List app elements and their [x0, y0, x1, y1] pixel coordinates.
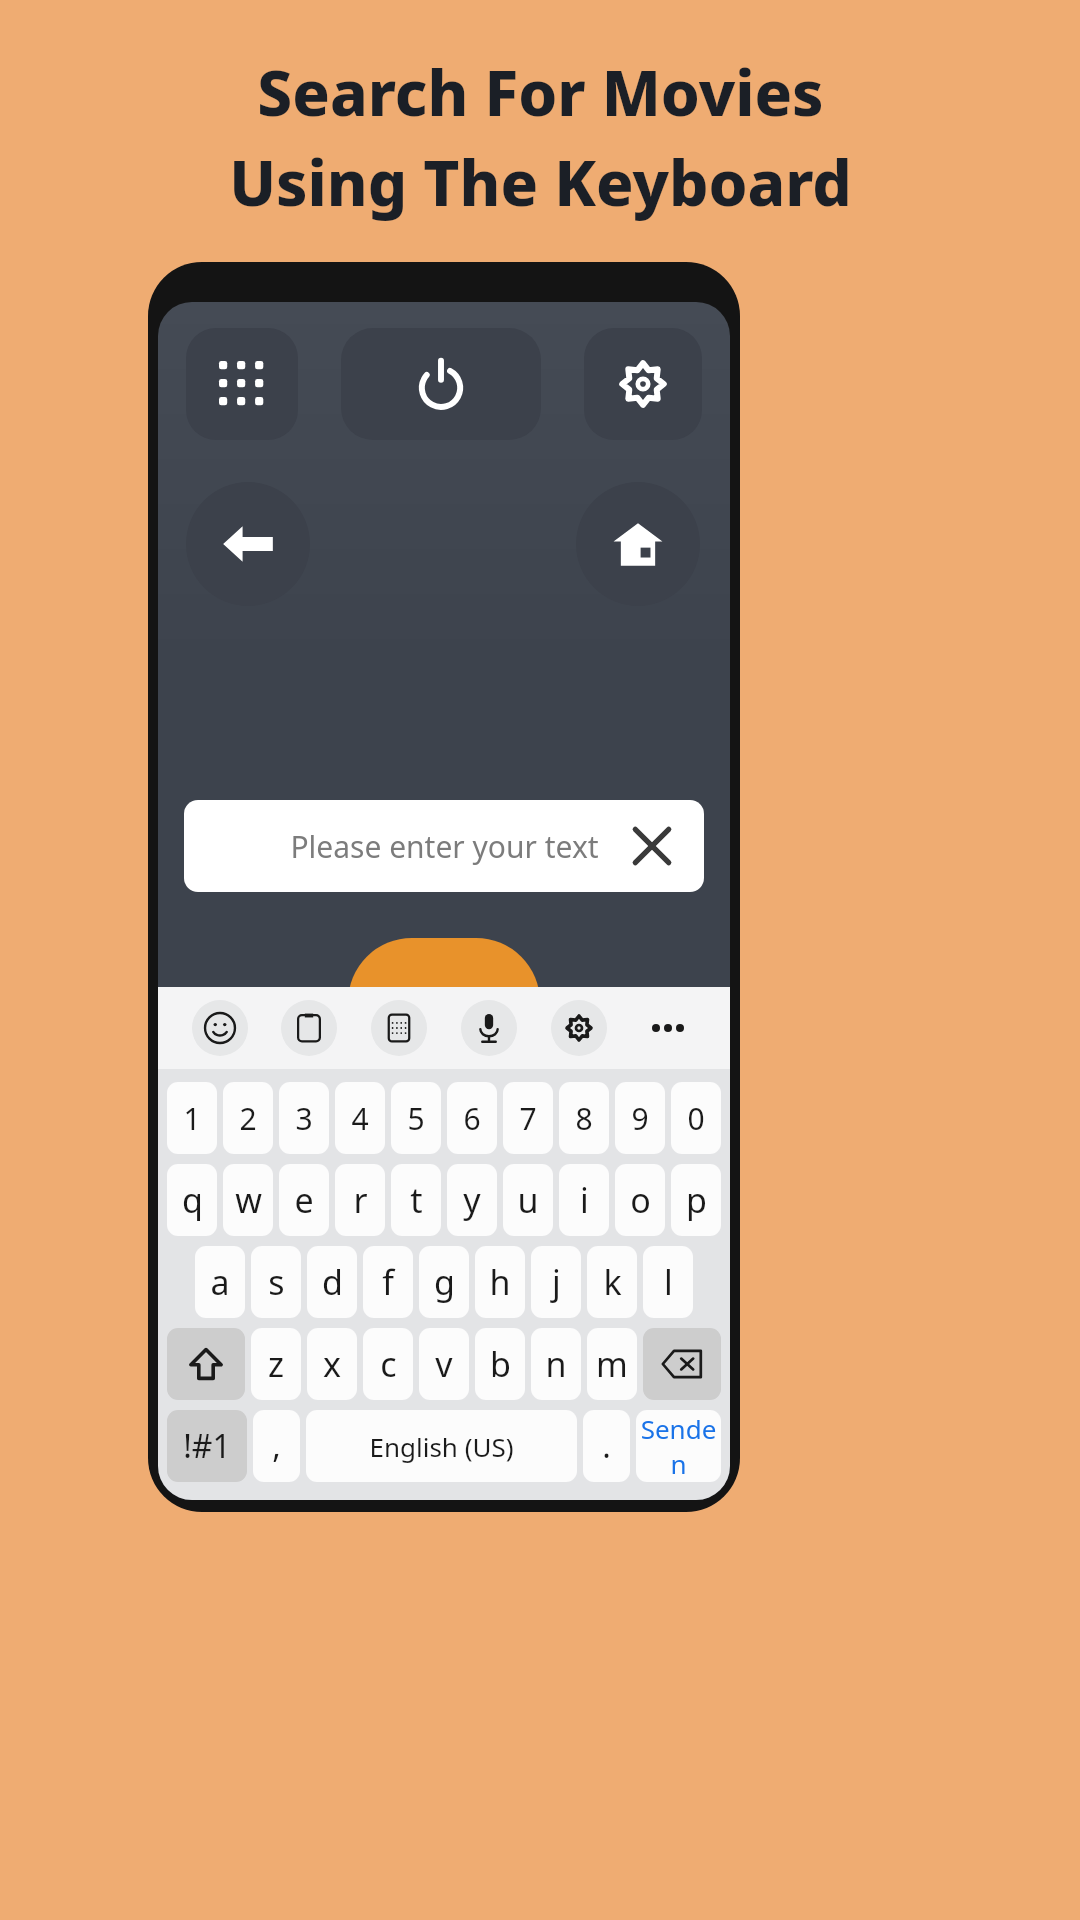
button[interactable]: p	[671, 1164, 721, 1236]
button[interactable]: e	[279, 1164, 329, 1236]
button[interactable]: 5	[391, 1082, 441, 1154]
button[interactable]: b	[475, 1328, 525, 1400]
button[interactable]: y	[447, 1164, 497, 1236]
button[interactable]: 4	[335, 1082, 385, 1154]
staticText: e	[294, 1177, 314, 1223]
staticText: 6	[463, 1098, 481, 1139]
staticText: y	[463, 1177, 481, 1223]
staticText: u	[517, 1177, 539, 1223]
button[interactable]: OK	[355, 1086, 533, 1259]
button[interactable]: i	[559, 1164, 609, 1236]
staticText: 3	[295, 1098, 313, 1139]
button[interactable]: 9	[615, 1082, 665, 1154]
button[interactable]: Keypad	[371, 1000, 427, 1056]
staticText: b	[490, 1341, 511, 1387]
button[interactable]: c	[363, 1328, 413, 1400]
button[interactable]: 3	[279, 1082, 329, 1154]
button[interactable]: 6	[447, 1082, 497, 1154]
button[interactable]: q	[167, 1164, 217, 1236]
staticText: m	[596, 1341, 628, 1387]
staticText: j	[552, 1259, 561, 1305]
staticText: o	[630, 1177, 651, 1223]
button[interactable]: m	[587, 1328, 637, 1400]
button[interactable]: a	[195, 1246, 245, 1318]
button[interactable]: Send	[636, 1410, 721, 1482]
button[interactable]: Up	[348, 938, 540, 1188]
staticText: d	[322, 1259, 343, 1305]
staticText: !#1	[183, 1424, 231, 1468]
staticText: 4	[351, 1098, 369, 1139]
staticText: x	[323, 1341, 341, 1387]
staticText: 2	[239, 1098, 257, 1139]
staticText: 5	[407, 1098, 425, 1139]
button[interactable]: h	[475, 1246, 525, 1318]
staticText: 1	[183, 1098, 201, 1139]
button[interactable]: .	[583, 1410, 630, 1482]
button[interactable]: l	[643, 1246, 693, 1318]
button[interactable]: Power	[341, 328, 541, 440]
button[interactable]: 7	[503, 1082, 553, 1154]
button[interactable]: z	[251, 1328, 301, 1400]
staticText: w	[235, 1177, 262, 1223]
button[interactable]: w	[223, 1164, 273, 1236]
button[interactable]: Please enter your text	[184, 800, 704, 892]
button[interactable]: Clipboard	[281, 1000, 337, 1056]
staticText: Senden	[636, 1411, 721, 1481]
staticText: OK	[400, 1129, 488, 1211]
staticText: a	[210, 1259, 230, 1305]
button[interactable]: Emoji	[192, 1000, 248, 1056]
staticText: t	[410, 1177, 423, 1223]
button[interactable]: 1	[167, 1082, 217, 1154]
button[interactable]: u	[503, 1164, 553, 1236]
button[interactable]: o	[615, 1164, 665, 1236]
button[interactable]: t	[391, 1164, 441, 1236]
button[interactable]: k	[587, 1246, 637, 1318]
button[interactable]: Left	[210, 1086, 362, 1278]
button[interactable]: Keyboard settings	[551, 1000, 607, 1056]
button[interactable]: Backspace	[643, 1328, 721, 1400]
button[interactable]: n	[531, 1328, 581, 1400]
staticText: v	[435, 1341, 453, 1387]
staticText: 8	[575, 1098, 593, 1139]
button[interactable]: x	[307, 1328, 357, 1400]
staticText: Using The Keyboard	[229, 140, 852, 224]
staticText: ,	[272, 1424, 281, 1468]
button[interactable]: Voice input	[461, 1000, 517, 1056]
button[interactable]: f	[363, 1246, 413, 1318]
staticText: 9	[631, 1098, 649, 1139]
button[interactable]: 8	[559, 1082, 609, 1154]
button[interactable]: Space	[306, 1410, 577, 1482]
button[interactable]: v	[419, 1328, 469, 1400]
button[interactable]: Right	[526, 1086, 678, 1278]
button[interactable]: Symbols	[167, 1410, 247, 1482]
staticText: n	[545, 1341, 567, 1387]
button[interactable]: s	[251, 1246, 301, 1318]
staticText: l	[664, 1259, 673, 1305]
button[interactable]: g	[419, 1246, 469, 1318]
button[interactable]: Shift	[167, 1328, 245, 1400]
button[interactable]: Back	[186, 482, 310, 606]
staticText: r	[353, 1177, 368, 1223]
button[interactable]: More options	[640, 1000, 696, 1056]
button[interactable]: Home	[576, 482, 700, 606]
button[interactable]: 2	[223, 1082, 273, 1154]
staticText: f	[382, 1259, 394, 1305]
staticText: i	[580, 1177, 589, 1223]
button[interactable]: Keypad	[186, 328, 298, 440]
staticText: z	[268, 1341, 284, 1387]
staticText: Please enter your text	[290, 826, 599, 867]
staticText: English (US)	[369, 1429, 514, 1464]
staticText: q	[182, 1177, 203, 1223]
button[interactable]: 0	[671, 1082, 721, 1154]
staticText: 7	[519, 1098, 537, 1139]
staticText: g	[434, 1259, 455, 1305]
button[interactable]: r	[335, 1164, 385, 1236]
staticText: c	[380, 1341, 397, 1387]
button[interactable]: Clear	[624, 818, 680, 874]
button[interactable]: Settings	[584, 328, 702, 440]
button[interactable]: ,	[253, 1410, 300, 1482]
button[interactable]: d	[307, 1246, 357, 1318]
staticText: Search For Movies	[257, 50, 824, 134]
staticText: h	[489, 1259, 511, 1305]
button[interactable]: j	[531, 1246, 581, 1318]
